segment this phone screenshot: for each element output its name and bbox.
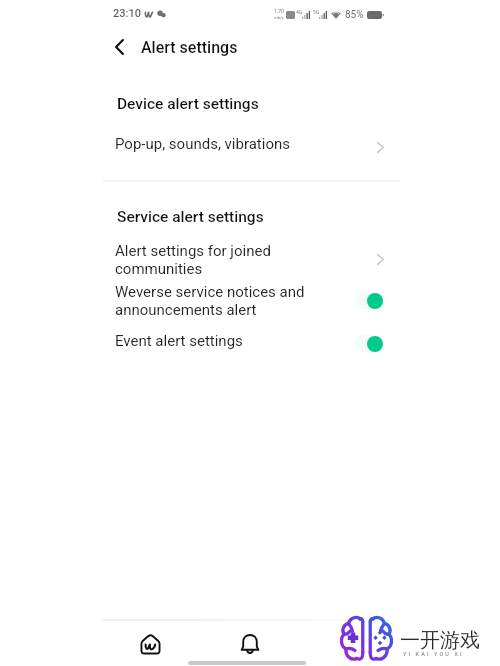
staticText: 23:10 (113, 7, 141, 20)
button[interactable]: Notifications (210, 626, 290, 662)
staticText: Weverse service notices and announcement… (115, 283, 305, 319)
button[interactable]: Event alert settings (100, 328, 400, 358)
staticText: 4G (296, 9, 303, 16)
staticText: Device alert settings (117, 95, 259, 113)
button[interactable]: Weverse service notices and announcement… (100, 279, 400, 321)
staticText: 1.70 (274, 8, 284, 15)
staticText: 一开游戏 (400, 628, 480, 653)
button[interactable]: Home (110, 626, 190, 662)
button[interactable]: Pop-up, sounds, vibrations (100, 131, 400, 163)
staticText: Event alert settings (115, 332, 243, 350)
button[interactable]: Back (104, 31, 135, 62)
staticText: Alert settings (141, 38, 238, 57)
staticText: YI KAI YOU XI (403, 651, 464, 657)
button[interactable]: Alert settings for joined communities (100, 238, 400, 280)
staticText: Pop-up, sounds, vibrations (115, 135, 290, 153)
staticText: 85% (345, 9, 364, 21)
staticText: Alert settings for joined communities (115, 242, 271, 278)
staticText: Service alert settings (117, 208, 264, 226)
staticText: 5G (313, 9, 320, 16)
staticText: mb/s (274, 15, 284, 20)
